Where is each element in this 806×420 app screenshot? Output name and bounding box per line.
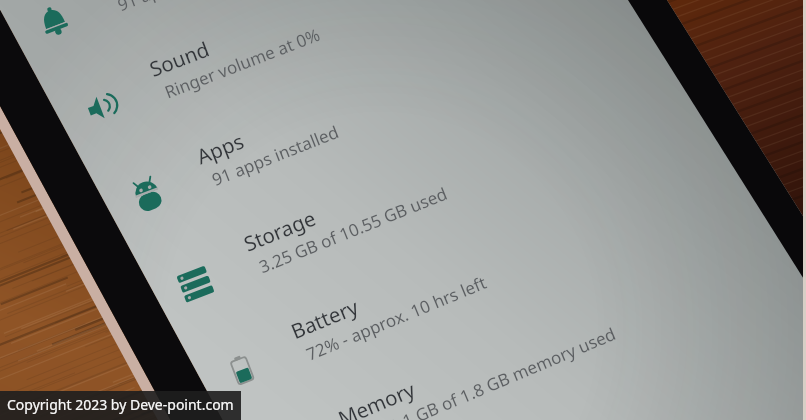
button[interactable]: Android settings screen photo bbox=[0, 0, 806, 420]
